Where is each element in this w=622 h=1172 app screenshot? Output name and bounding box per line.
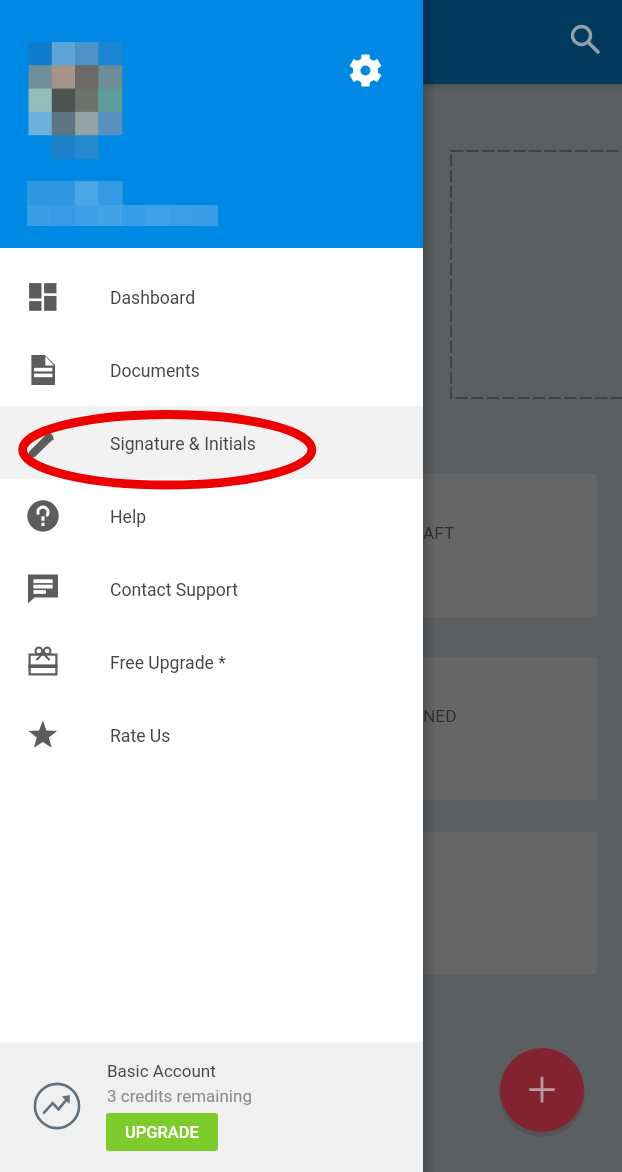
button[interactable]: Search: [557, 13, 606, 62]
staticText: 3 credits remaining: [107, 1086, 252, 1106]
button[interactable]: Free Upgrade *: [0, 625, 423, 698]
staticText: UPGRADE: [125, 1123, 199, 1142]
button[interactable]: [402, 832, 597, 974]
staticText: Dashboard: [110, 288, 196, 309]
button[interactable]: Close navigation drawer: [423, 0, 622, 1172]
button[interactable]: AFT: [402, 474, 597, 617]
staticText: Basic Account: [107, 1061, 216, 1081]
staticText: NED: [423, 706, 457, 726]
button[interactable]: Help: [0, 479, 423, 552]
button[interactable]: Documents: [0, 333, 423, 406]
staticText: AFT: [423, 523, 455, 543]
staticText: Contact Support: [110, 580, 238, 601]
button[interactable]: Contact Support: [0, 552, 423, 625]
button[interactable]: Settings: [341, 46, 390, 95]
staticText: Rate Us: [110, 726, 171, 747]
button[interactable]: Dashboard: [0, 260, 423, 333]
staticText: Free Upgrade *: [110, 653, 226, 674]
button[interactable]: Rate Us: [0, 698, 423, 771]
staticText: Help: [110, 507, 147, 528]
button[interactable]: Signature & Initials: [0, 406, 423, 479]
staticText: Documents: [110, 361, 200, 382]
staticText: Signature & Initials: [110, 434, 256, 455]
button[interactable]: UPGRADE: [106, 1113, 218, 1151]
button[interactable]: Add document: [500, 1048, 584, 1132]
button[interactable]: NED: [402, 657, 597, 800]
